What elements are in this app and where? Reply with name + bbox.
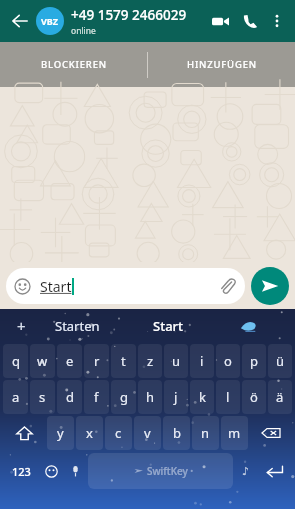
button[interactable]: f [84, 380, 109, 414]
staticText: t [121, 352, 126, 370]
staticText: h [146, 388, 155, 406]
button[interactable]: r [84, 344, 109, 378]
button[interactable]: u [164, 344, 188, 378]
button[interactable]: Send [251, 267, 289, 305]
button[interactable]: c [105, 416, 132, 450]
staticText: m [228, 424, 241, 442]
button[interactable]: BLOCKIEREN [0, 42, 147, 87]
button[interactable]: b [163, 416, 190, 450]
staticText: c [115, 424, 122, 442]
staticText: i [200, 352, 204, 370]
button[interactable]: e [57, 344, 82, 378]
button[interactable]: Starten [32, 309, 123, 343]
button[interactable]: ä [268, 380, 292, 414]
staticText: ä [276, 388, 284, 406]
button[interactable]: z [138, 344, 162, 378]
button[interactable]: Space [88, 453, 233, 489]
button[interactable]: v [134, 416, 161, 450]
button[interactable]: Call [235, 6, 265, 36]
staticText: Start [40, 277, 72, 296]
button[interactable]: a [3, 380, 28, 414]
button[interactable]: Music [235, 453, 257, 489]
button[interactable]: Start [123, 309, 213, 343]
button[interactable]: Voice input [64, 453, 86, 489]
button[interactable]: Enter [257, 453, 291, 489]
staticText: s [39, 388, 46, 406]
button[interactable]: s [30, 380, 55, 414]
button[interactable]: g [111, 380, 136, 414]
button[interactable]: w [30, 344, 55, 378]
button[interactable]: x [76, 416, 103, 450]
staticText: x [86, 424, 93, 442]
button[interactable]: Backspace [250, 416, 292, 450]
button[interactable]: Shift [3, 416, 45, 450]
staticText: q [12, 352, 20, 370]
staticText: n [201, 424, 210, 442]
button[interactable]: Attach [217, 276, 237, 296]
button[interactable]: l [216, 380, 240, 414]
staticText: r [94, 352, 100, 370]
staticText: o [224, 352, 232, 370]
staticText: k [199, 388, 206, 406]
button[interactable]: More options [265, 9, 289, 33]
staticText: b [173, 424, 181, 442]
button[interactable]: h [138, 380, 162, 414]
staticText: VBZ [41, 15, 59, 27]
button[interactable]: y [47, 416, 74, 450]
staticText: ü [276, 352, 285, 370]
staticText: d [66, 388, 74, 406]
staticText: ö [250, 388, 258, 406]
button[interactable]: Emoji [38, 453, 64, 489]
staticText: online [71, 25, 96, 37]
button[interactable]: Start [14, 268, 237, 304]
button[interactable]: j [164, 380, 188, 414]
button[interactable]: m [221, 416, 248, 450]
staticText: a [12, 388, 20, 406]
button[interactable]: t [111, 344, 136, 378]
staticText: f [94, 388, 99, 406]
button[interactable]: o [216, 344, 240, 378]
button[interactable]: d [57, 380, 82, 414]
staticText: z [147, 352, 154, 370]
button[interactable]: k [190, 380, 214, 414]
button[interactable]: n [192, 416, 219, 450]
staticText: j [174, 388, 178, 406]
staticText: e [66, 352, 74, 370]
button[interactable]: p [242, 344, 266, 378]
button[interactable]: Video call [205, 6, 235, 36]
staticText: w [37, 352, 48, 370]
button[interactable]: Back [6, 7, 34, 35]
staticText: +49 1579 2466029 [71, 6, 187, 24]
staticText: ♪ [242, 465, 250, 478]
staticText: v [144, 424, 151, 442]
staticText: + [17, 316, 26, 336]
staticText: u [172, 352, 181, 370]
staticText: BLOCKIEREN [41, 58, 107, 71]
button[interactable]: Add [10, 315, 32, 337]
button[interactable]: 123 [4, 453, 38, 489]
staticText: Start [153, 317, 184, 335]
staticText: 123 [12, 464, 31, 479]
staticText: Starten [55, 317, 100, 335]
button[interactable]: i [190, 344, 214, 378]
button[interactable]: ü [268, 344, 292, 378]
staticText: p [250, 352, 258, 370]
button[interactable]: VBZ [36, 7, 64, 35]
staticText: g [120, 388, 128, 406]
staticText: y [57, 424, 64, 442]
staticText: HINZUFÜGEN [187, 58, 257, 71]
button[interactable]: Emoji suggestion [213, 309, 285, 343]
button[interactable]: HINZUFÜGEN [148, 42, 295, 87]
button[interactable]: q [3, 344, 28, 378]
button[interactable]: ö [242, 380, 266, 414]
staticText: SwiftKey [147, 464, 188, 478]
staticText: l [226, 388, 230, 406]
